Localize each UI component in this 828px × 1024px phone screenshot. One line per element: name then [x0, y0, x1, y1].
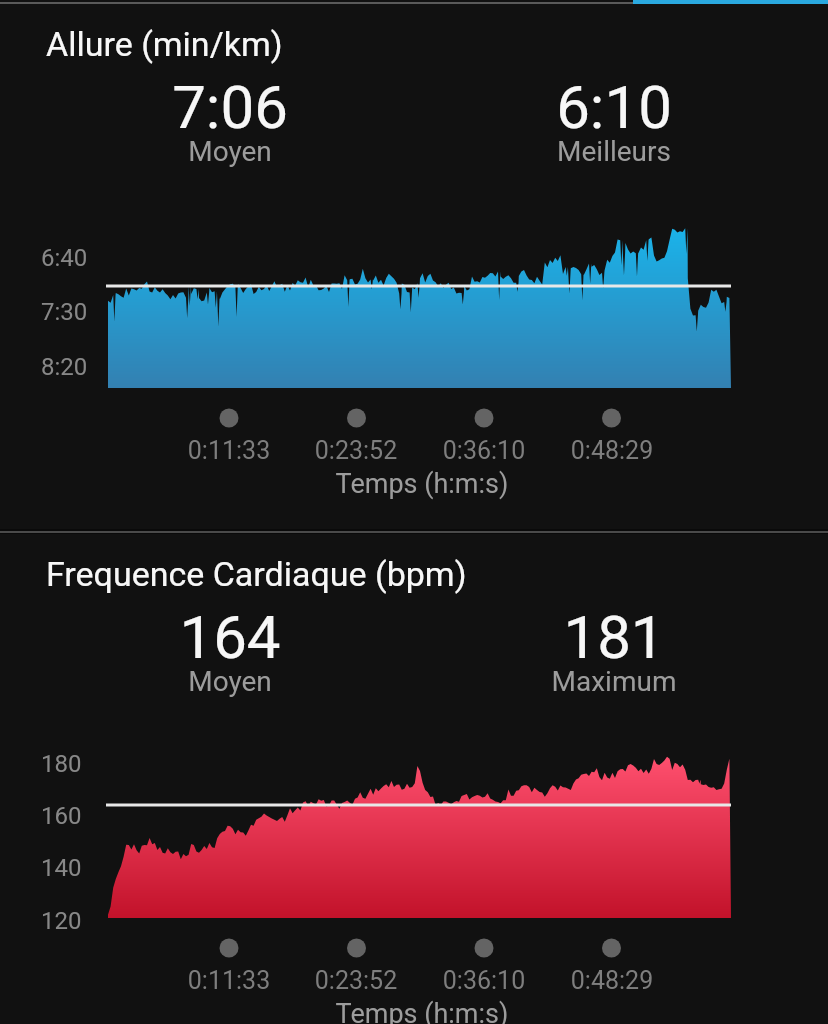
staticText: 0:23:52 — [286, 966, 426, 995]
staticText: Temps (h:m:s) — [8, 998, 828, 1024]
staticText: 180 — [41, 750, 82, 778]
staticText: 160 — [41, 802, 82, 830]
staticText: 0:23:52 — [286, 436, 426, 465]
staticText: Frequence Cardiaque (bpm) — [46, 554, 467, 594]
staticText: 164 — [0, 602, 460, 672]
staticText: Meilleurs — [368, 135, 828, 168]
staticText: 0:48:29 — [542, 966, 682, 995]
staticText: 0:11:33 — [159, 966, 299, 995]
staticText: 0:11:33 — [159, 436, 299, 465]
button[interactable]: Frequence Cardiaque (bpm) — [0, 530, 828, 1024]
staticText: 8:20 — [41, 353, 88, 381]
staticText: 6:10 — [368, 72, 828, 142]
button[interactable]: Allure (min/km) — [0, 0, 828, 530]
staticText: 7:06 — [0, 72, 460, 142]
staticText: 0:36:10 — [414, 966, 554, 995]
staticText: Moyen — [0, 135, 460, 168]
staticText: 181 — [368, 602, 828, 672]
staticText: 140 — [41, 854, 82, 882]
staticText: Moyen — [0, 665, 460, 698]
staticText: Allure (min/km) — [46, 24, 283, 64]
staticText: 0:36:10 — [414, 436, 554, 465]
staticText: 6:40 — [41, 244, 88, 272]
staticText: 120 — [41, 907, 82, 935]
staticText: 0:48:29 — [542, 436, 682, 465]
staticText: Maximum — [368, 665, 828, 698]
staticText: Temps (h:m:s) — [8, 468, 828, 500]
staticText: 7:30 — [41, 298, 88, 326]
